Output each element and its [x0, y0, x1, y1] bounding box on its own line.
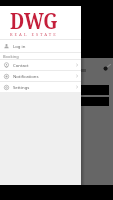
button[interactable]: Search — [102, 63, 111, 72]
staticText: REAL ESTATE — [10, 32, 58, 36]
staticText: Booking — [3, 54, 19, 59]
staticText: Settings — [13, 84, 30, 90]
button[interactable]: Notifications — [0, 70, 81, 81]
button[interactable]: Settings — [0, 81, 81, 92]
staticText: Contact — [13, 62, 29, 68]
staticText: DWG — [10, 7, 58, 36]
button[interactable]: Contact — [0, 59, 81, 70]
staticText: Log in — [13, 43, 26, 49]
button[interactable]: Log in — [0, 39, 81, 52]
staticText: Notifications — [13, 73, 39, 79]
